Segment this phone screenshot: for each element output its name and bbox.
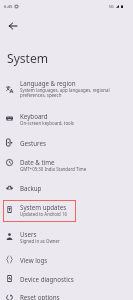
button[interactable]: Reset options xyxy=(0,287,133,300)
button[interactable]: Language & region xyxy=(0,73,133,100)
button[interactable]: Backup xyxy=(0,178,133,196)
staticText: Updated to Android 16 xyxy=(20,211,67,217)
staticText: Date & time xyxy=(20,158,55,166)
button[interactable]: Device diagnostics xyxy=(0,269,133,287)
staticText: Reset options xyxy=(20,293,60,300)
staticText: View logs xyxy=(20,256,48,264)
staticText: System xyxy=(7,50,49,66)
staticText: GMT+05:30 India Standard Time xyxy=(20,166,87,172)
staticText: Gestures xyxy=(20,139,46,147)
staticText: 6:45 xyxy=(4,4,13,10)
staticText: Keyboard xyxy=(20,112,48,120)
staticText: On-screen keyboard, tools xyxy=(20,120,74,126)
button[interactable]: Users xyxy=(0,224,133,251)
staticText: Device diagnostics xyxy=(20,275,74,283)
staticText: System languages, app languages, regiona… xyxy=(20,87,128,98)
staticText: Signed in as Owner xyxy=(20,238,60,244)
staticText: Language & region xyxy=(20,79,76,87)
staticText: Backup xyxy=(20,184,42,192)
staticText: 5G xyxy=(109,4,114,9)
staticText: Users xyxy=(20,230,37,238)
button[interactable]: Keyboard xyxy=(0,106,133,133)
button[interactable]: System updates xyxy=(0,197,133,224)
staticText: System updates xyxy=(20,203,67,211)
button[interactable]: Gestures xyxy=(0,133,133,151)
button[interactable]: Date & time xyxy=(0,152,133,179)
button[interactable]: View logs xyxy=(0,250,133,268)
button[interactable]: Back xyxy=(0,13,26,39)
